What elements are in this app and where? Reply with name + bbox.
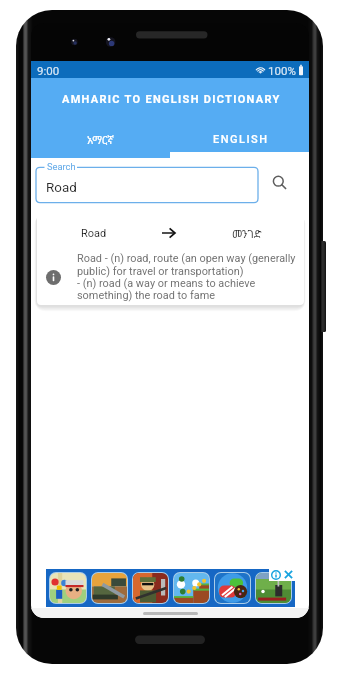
staticText: አማርኛ bbox=[87, 132, 114, 147]
staticText: Road bbox=[46, 180, 77, 196]
button[interactable]: Game ad 2 bbox=[132, 572, 169, 604]
staticText: Road - (n) road, route (an open way (gen… bbox=[77, 252, 301, 301]
staticText: ENGLISH bbox=[213, 133, 269, 146]
button[interactable]: አማርኛ bbox=[31, 126, 170, 158]
button[interactable]: Game ad 1 bbox=[91, 572, 128, 604]
button[interactable]: Road bbox=[37, 214, 304, 305]
button[interactable]: ENGLISH bbox=[170, 126, 309, 158]
button[interactable]: Game ad 0 bbox=[49, 572, 87, 604]
button[interactable]: Game ad 4 bbox=[214, 572, 251, 604]
button[interactable]: Ad info bbox=[269, 568, 282, 581]
staticText: መንገድ bbox=[232, 226, 262, 241]
button[interactable]: Close ad bbox=[282, 568, 295, 581]
staticText: 100% bbox=[268, 64, 296, 77]
button[interactable]: Game ad 3 bbox=[173, 572, 210, 604]
button[interactable]: Advertisement bbox=[46, 569, 295, 607]
staticText: 9:00 bbox=[37, 64, 60, 77]
staticText: Road bbox=[81, 227, 107, 240]
staticText: AMHARIC TO ENGLISH DICTIONARY bbox=[62, 93, 281, 106]
staticText: Search bbox=[47, 161, 76, 172]
button[interactable]: Search bbox=[258, 158, 302, 203]
button[interactable]: Search field bbox=[36, 158, 258, 203]
button[interactable]: Game ad 5 bbox=[255, 572, 292, 604]
